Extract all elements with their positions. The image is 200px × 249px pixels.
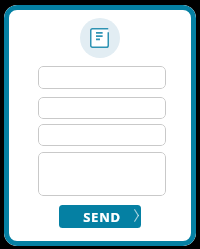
button[interactable] — [38, 66, 166, 89]
other: Submit — [134, 209, 139, 222]
other: Form — [90, 28, 109, 48]
button[interactable] — [38, 124, 166, 146]
button[interactable] — [38, 97, 166, 119]
button[interactable] — [38, 152, 166, 196]
staticText: SEND — [83, 208, 121, 226]
button[interactable]: SEND — [59, 205, 141, 228]
